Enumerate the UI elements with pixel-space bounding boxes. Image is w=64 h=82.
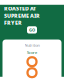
staticText: Nutrition xyxy=(24,43,39,48)
button[interactable]: GO xyxy=(27,26,37,33)
staticText: Score xyxy=(27,50,37,55)
staticText: GO xyxy=(29,27,35,32)
staticText: ROASTED AT SUPREME AIR FRYER xyxy=(4,5,40,26)
